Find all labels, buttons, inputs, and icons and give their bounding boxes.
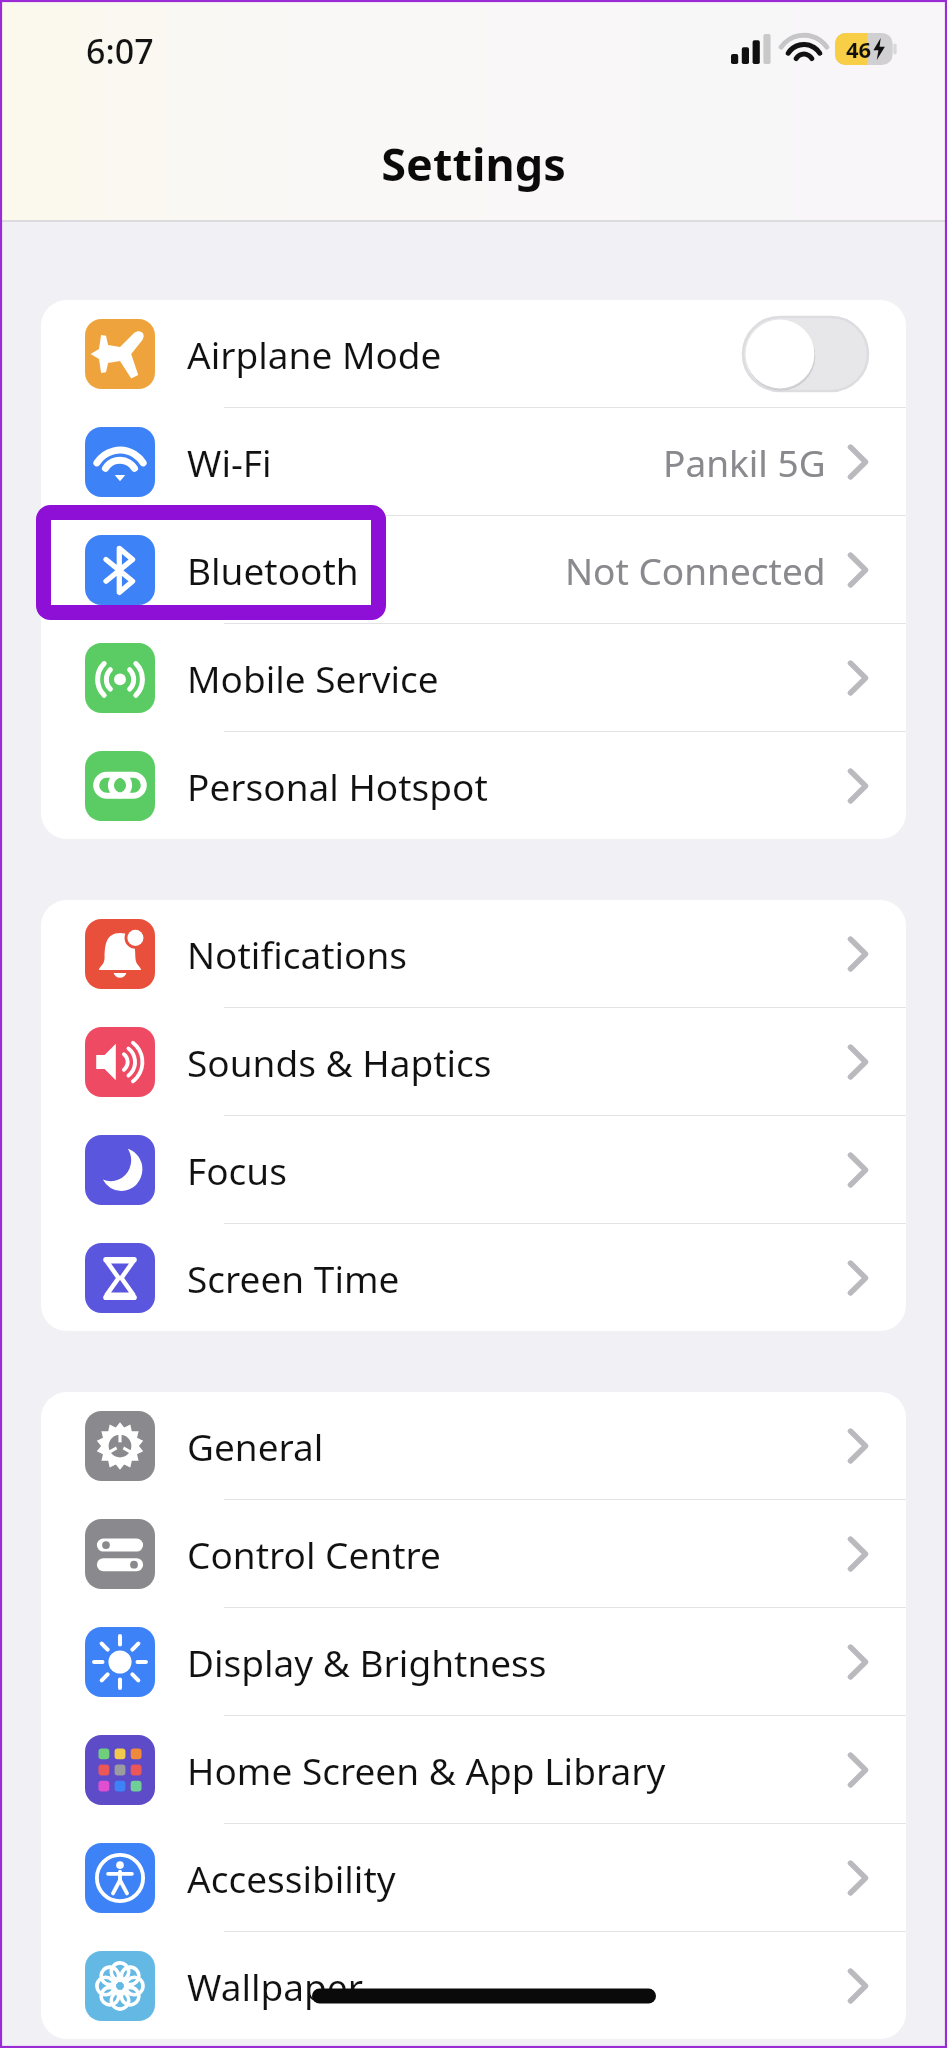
button[interactable]: Home Screen & App Library xyxy=(41,1716,906,1823)
staticText: 46 xyxy=(846,34,872,64)
staticText: Personal Hotspot xyxy=(187,761,488,811)
button[interactable]: Mobile Service xyxy=(41,624,906,731)
button[interactable]: Personal Hotspot xyxy=(41,732,906,839)
staticText: Focus xyxy=(187,1145,287,1195)
button[interactable]: Bluetooth xyxy=(41,516,906,623)
button[interactable]: Sounds & Haptics xyxy=(41,1008,906,1115)
staticText: Mobile Service xyxy=(187,653,439,703)
button[interactable]: Airplane Mode toggle xyxy=(743,317,868,391)
button[interactable]: Wi-Fi xyxy=(41,408,906,515)
staticText: Control Centre xyxy=(187,1529,441,1579)
button[interactable]: Display & Brightness xyxy=(41,1608,906,1715)
button[interactable]: Notifications xyxy=(41,900,906,1007)
staticText: Notifications xyxy=(187,929,408,979)
button[interactable]: General xyxy=(41,1392,906,1499)
staticText: Settings xyxy=(381,133,566,194)
button[interactable]: Airplane Mode xyxy=(41,300,906,407)
staticText: Not Connected xyxy=(565,545,826,595)
button[interactable]: Screen Time xyxy=(41,1224,906,1331)
staticText: 6:07 xyxy=(86,28,154,74)
staticText: Home Screen & App Library xyxy=(187,1745,666,1795)
staticText: Accessibility xyxy=(187,1853,396,1903)
staticText: Sounds & Haptics xyxy=(187,1037,492,1087)
staticText: Bluetooth xyxy=(187,545,359,595)
staticText: Screen Time xyxy=(187,1253,400,1303)
staticText: Display & Brightness xyxy=(187,1637,547,1687)
button[interactable]: Accessibility xyxy=(41,1824,906,1931)
button[interactable]: Control Centre xyxy=(41,1500,906,1607)
staticText: Wi-Fi xyxy=(187,437,272,487)
staticText: Pankil 5G xyxy=(663,437,826,487)
staticText: Airplane Mode xyxy=(187,329,442,379)
staticText: General xyxy=(187,1421,324,1471)
button[interactable]: Wallpaper xyxy=(41,1932,906,2039)
staticText: Wallpaper xyxy=(187,1961,363,2011)
button[interactable]: Focus xyxy=(41,1116,906,1223)
